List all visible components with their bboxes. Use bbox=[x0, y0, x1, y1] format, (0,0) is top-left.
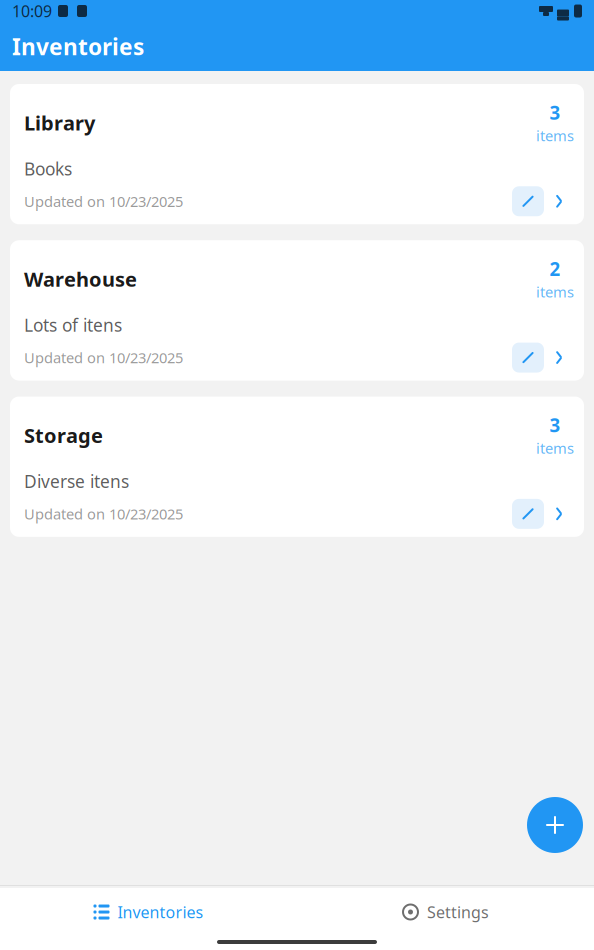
staticText: Updated on 10/23/2025 bbox=[24, 504, 183, 524]
button[interactable]: Library bbox=[10, 84, 584, 224]
staticText: Inventories bbox=[12, 31, 144, 61]
staticText: Settings bbox=[427, 901, 489, 923]
staticText: Inventories bbox=[117, 901, 203, 923]
staticText: items bbox=[536, 438, 574, 458]
staticText: Warehouse bbox=[24, 266, 137, 292]
staticText: Updated on 10/23/2025 bbox=[24, 348, 183, 367]
staticText: Diverse itens bbox=[24, 470, 129, 493]
button[interactable]: Edit Storage bbox=[512, 499, 544, 529]
button[interactable]: Edit Library bbox=[512, 186, 544, 216]
staticText: items bbox=[536, 282, 574, 302]
button[interactable]: Storage bbox=[10, 397, 584, 537]
staticText: 10:09 bbox=[12, 0, 52, 22]
staticText: 3 bbox=[549, 100, 560, 125]
button[interactable]: Open Library bbox=[544, 186, 574, 216]
button[interactable]: Add inventory bbox=[527, 797, 583, 853]
button[interactable]: Inventories bbox=[0, 892, 297, 932]
staticText: Storage bbox=[24, 422, 103, 448]
staticText: 2 bbox=[549, 256, 560, 281]
button[interactable]: Open Warehouse bbox=[544, 343, 574, 373]
staticText: Lots of itens bbox=[24, 314, 122, 337]
button[interactable]: Edit Warehouse bbox=[512, 343, 544, 373]
staticText: Books bbox=[24, 157, 72, 180]
staticText: 3 bbox=[549, 413, 560, 437]
button[interactable]: Open Storage bbox=[544, 499, 574, 529]
staticText: Library bbox=[24, 109, 95, 136]
staticText: Updated on 10/23/2025 bbox=[24, 191, 183, 211]
button[interactable]: Warehouse bbox=[10, 240, 584, 381]
staticText: items bbox=[536, 126, 574, 145]
button[interactable]: Settings bbox=[297, 892, 594, 932]
